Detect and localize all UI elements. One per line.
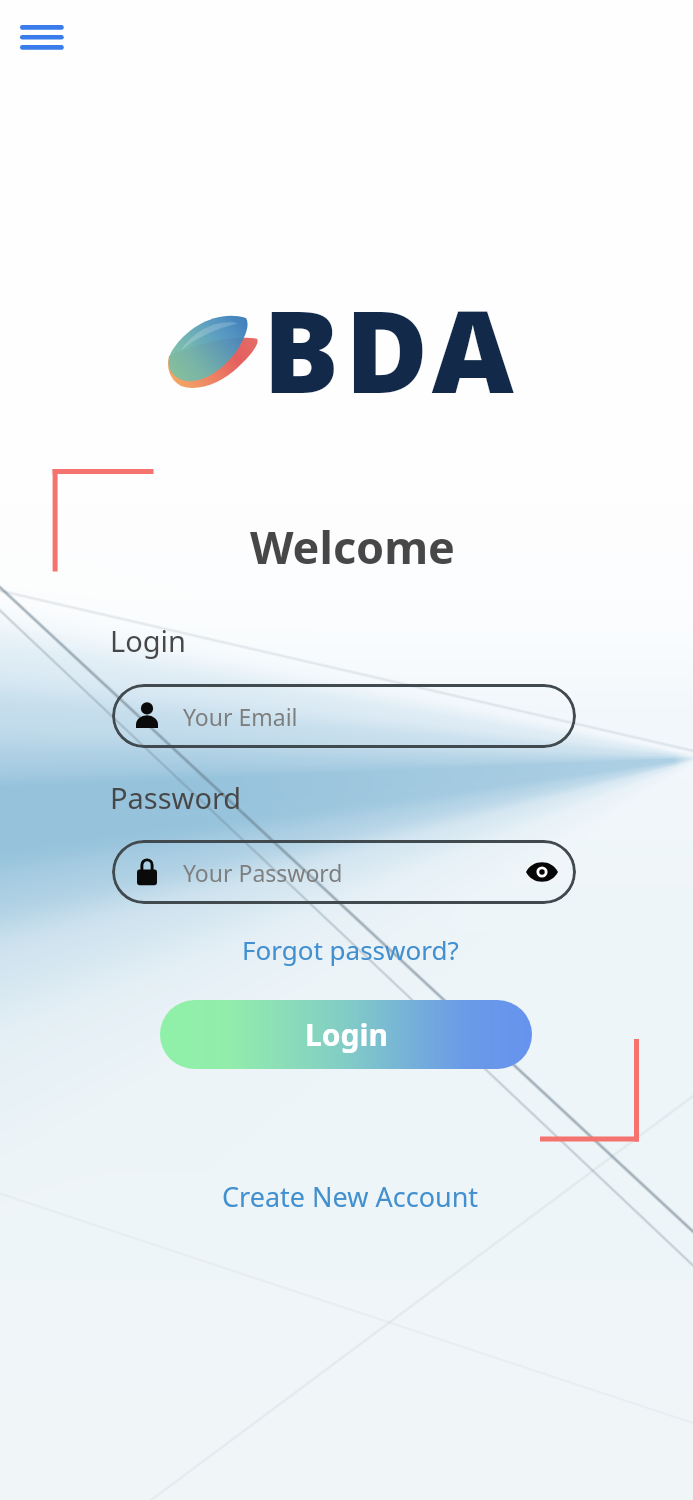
staticText: Create New Account	[222, 1178, 479, 1215]
staticText: Your Password	[183, 857, 343, 888]
staticText: Your Email	[183, 701, 298, 732]
staticText: Password	[110, 778, 242, 817]
staticText: Login	[110, 621, 186, 660]
staticText: Welcome	[250, 516, 455, 577]
button[interactable]: Show password	[520, 850, 564, 894]
button[interactable]: Create New Account	[214, 1172, 487, 1221]
staticText: Login	[305, 1014, 388, 1055]
staticText: BDA	[263, 272, 520, 426]
button[interactable]: Your Email	[112, 684, 576, 748]
button[interactable]: Menu	[14, 14, 70, 62]
button[interactable]: Login	[160, 1000, 532, 1069]
staticText: Forgot password?	[242, 932, 459, 967]
button[interactable]: Forgot password?	[234, 926, 467, 973]
button[interactable]: Your Password	[112, 840, 576, 904]
